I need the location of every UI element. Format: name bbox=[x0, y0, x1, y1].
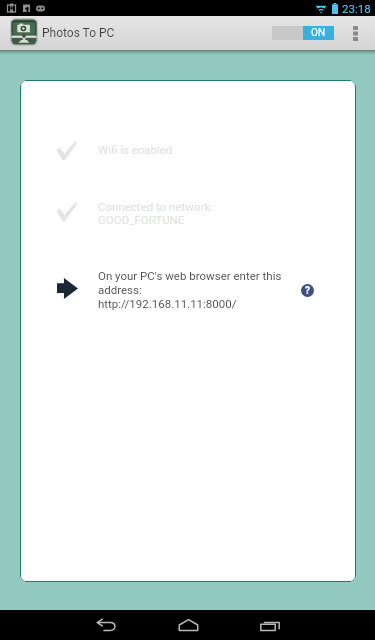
staticText: Wifi is enabled bbox=[98, 143, 173, 156]
staticText: On your PC's web browser enter this addr… bbox=[98, 269, 282, 297]
button[interactable]: More options bbox=[345, 16, 365, 50]
staticText: Photos To PC bbox=[42, 26, 115, 40]
staticText: ON bbox=[311, 27, 326, 39]
staticText: GOOD_FORTUNE bbox=[98, 213, 185, 226]
staticText: http://192.168.11.11:8000/ bbox=[98, 297, 237, 310]
button[interactable]: Photos To PC bbox=[10, 18, 38, 46]
button[interactable]: Server on off toggle bbox=[272, 26, 334, 40]
staticText: ? bbox=[305, 285, 310, 297]
button[interactable]: Help bbox=[301, 284, 314, 297]
button[interactable]: Back bbox=[65, 610, 147, 640]
staticText: 23:18 bbox=[342, 2, 371, 15]
staticText: Connected to network: bbox=[98, 200, 214, 213]
button[interactable]: Recent apps bbox=[229, 610, 311, 640]
button[interactable]: Home bbox=[147, 610, 229, 640]
